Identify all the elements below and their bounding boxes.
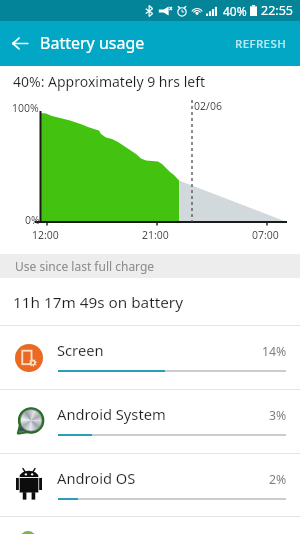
staticText: 21:00 bbox=[142, 228, 169, 242]
button[interactable]: Back bbox=[0, 21, 40, 66]
staticText: Screen bbox=[57, 340, 104, 360]
staticText: 02/06 bbox=[194, 99, 222, 113]
staticText: 11h 17m 49s on battery bbox=[13, 292, 183, 313]
staticText: 40% bbox=[223, 3, 247, 19]
button[interactable] bbox=[0, 517, 300, 534]
button[interactable]: REFRESH bbox=[222, 21, 300, 66]
button[interactable]: Android System bbox=[0, 390, 300, 454]
button[interactable]: Android OS bbox=[0, 454, 300, 517]
staticText: 40%: Approximately 9 hrs left bbox=[13, 72, 206, 91]
staticText: 100% bbox=[12, 101, 39, 115]
staticText: Use since last full charge bbox=[15, 258, 155, 274]
staticText: 3% bbox=[269, 407, 287, 424]
staticText: 0% bbox=[25, 213, 40, 227]
button[interactable]: Screen bbox=[0, 326, 300, 390]
staticText: Battery usage bbox=[40, 32, 145, 54]
staticText: 07:00 bbox=[252, 228, 279, 242]
staticText: REFRESH bbox=[235, 36, 287, 52]
staticText: Android OS bbox=[57, 468, 136, 488]
staticText: 12:00 bbox=[32, 228, 59, 242]
staticText: 22:55 bbox=[261, 2, 293, 19]
staticText: 14% bbox=[262, 343, 287, 360]
staticText: Android System bbox=[57, 404, 166, 424]
staticText: 2% bbox=[269, 471, 287, 488]
